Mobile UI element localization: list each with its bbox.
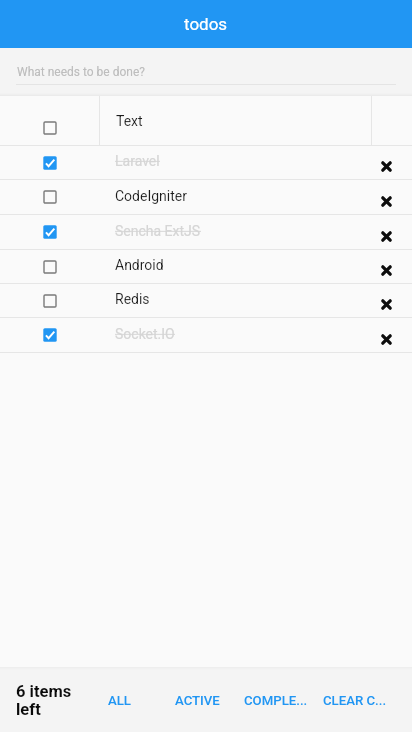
staticText: What needs to be done? [17, 65, 145, 79]
staticText: ALL [108, 693, 131, 708]
button[interactable]: ALL [80, 670, 158, 732]
button[interactable]: Toggle Socket.IO [0, 318, 99, 352]
button[interactable]: Toggle CodeIgniter [0, 180, 99, 214]
button[interactable]: Delete Laravel [352, 146, 412, 179]
staticText: ACTIVE [175, 693, 220, 708]
staticText: Sencha ExtJS [115, 223, 201, 239]
staticText: Redis [115, 291, 150, 307]
button[interactable]: What needs to be done? [0, 48, 412, 85]
button[interactable]: todos [0, 0, 412, 48]
staticText: todos [184, 14, 228, 34]
button[interactable]: Delete CodeIgniter [352, 180, 412, 214]
button[interactable]: ACTIVE [158, 670, 236, 732]
button[interactable]: Toggle Laravel [0, 146, 99, 179]
staticText: CLEAR C... [323, 693, 387, 708]
button[interactable]: Delete Android [352, 250, 412, 283]
staticText: Text [116, 113, 143, 129]
button[interactable]: Toggle Redis [0, 284, 99, 317]
button[interactable]: Delete Socket.IO [352, 318, 412, 352]
staticText: COMPLE... [244, 693, 308, 708]
button[interactable]: Toggle Sencha ExtJS [0, 215, 99, 249]
button[interactable]: Toggle all [0, 96, 99, 145]
staticText: Socket.IO [115, 326, 175, 342]
button[interactable]: CLEAR C... [315, 670, 394, 732]
button[interactable]: Delete Sencha ExtJS [352, 215, 412, 249]
button[interactable]: COMPLE... [236, 670, 315, 732]
staticText: Android [115, 257, 164, 273]
button[interactable]: Toggle Android [0, 250, 99, 283]
staticText: CodeIgniter [115, 188, 187, 204]
staticText: Laravel [115, 153, 160, 169]
button[interactable]: Delete Redis [352, 284, 412, 317]
staticText: 6 items left [16, 682, 80, 719]
